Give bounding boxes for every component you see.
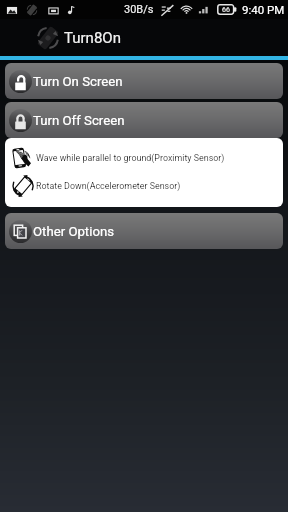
staticText: 9:40 PM bbox=[242, 3, 285, 16]
staticText: 66 bbox=[222, 6, 230, 14]
staticText: Rotate Down(Accelerometer Sensor) bbox=[36, 181, 181, 191]
staticText: Wave while parallel to ground(Proximity … bbox=[36, 153, 225, 163]
button[interactable]: Rotate Down(Accelerometer Sensor) bbox=[5, 172, 283, 200]
staticText: Turn8On bbox=[64, 29, 121, 47]
button[interactable]: Other Options bbox=[5, 213, 283, 249]
staticText: 30B/s bbox=[124, 3, 154, 16]
button[interactable]: Turn Off Screen bbox=[5, 102, 283, 138]
staticText: Turn On Screen bbox=[33, 74, 123, 89]
button[interactable]: Turn On Screen bbox=[5, 63, 283, 99]
staticText: Turn Off Screen bbox=[33, 113, 125, 128]
staticText: Other Options bbox=[33, 224, 114, 239]
button[interactable]: Wave while parallel to ground(Proximity … bbox=[5, 144, 283, 172]
button[interactable]: Turn8On home bbox=[0, 19, 129, 56]
